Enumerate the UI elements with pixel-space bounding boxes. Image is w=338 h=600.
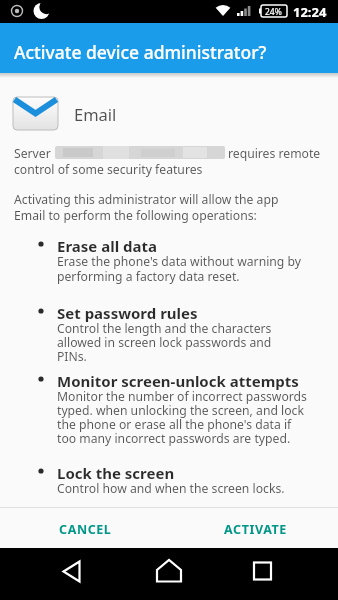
- staticText: Control how and when the screen locks.: [57, 480, 285, 497]
- staticText: typed. when unlocking the screen, and lo…: [57, 402, 304, 419]
- staticText: control of some security features: [14, 161, 203, 178]
- staticText: Email: [74, 103, 117, 125]
- button[interactable]: Email: [74, 103, 117, 125]
- button[interactable]: [0, 548, 112, 600]
- staticText: CANCEL: [59, 521, 112, 538]
- staticText: too many incorrect passwords are typed.: [57, 430, 291, 447]
- staticText: allowed in screen lock passwords and: [57, 334, 272, 351]
- staticText: requires remote: [228, 145, 321, 162]
- staticText: Monitor screen-unlock attempts: [57, 371, 299, 391]
- staticText: Set password rules: [57, 303, 198, 323]
- staticText: ACTIVATE: [224, 521, 287, 538]
- button[interactable]: ACTIVATE: [208, 512, 302, 546]
- button[interactable]: [112, 548, 225, 600]
- staticText: Email to perform the following operation…: [14, 207, 257, 224]
- staticText: 24%: [265, 6, 282, 18]
- staticText: performing a factory data reset.: [57, 268, 240, 285]
- staticText: Monitor the number of incorrect password…: [57, 388, 307, 405]
- staticText: Lock the screen: [57, 463, 175, 483]
- staticText: Activating this administrator will allow…: [14, 191, 279, 208]
- staticText: PINs.: [57, 348, 87, 365]
- staticText: 12:24: [293, 3, 327, 21]
- staticText: Activate device administrator?: [14, 40, 267, 64]
- button[interactable]: [225, 548, 338, 600]
- staticText: Erase the phone's data without warning b…: [57, 253, 301, 270]
- staticText: Server: [14, 145, 51, 162]
- staticText: Erase all data: [57, 236, 157, 256]
- staticText: Control the length and the characters: [57, 320, 272, 337]
- staticText: the phone or erase all the phone's data …: [57, 416, 292, 433]
- button[interactable]: CANCEL: [40, 512, 130, 546]
